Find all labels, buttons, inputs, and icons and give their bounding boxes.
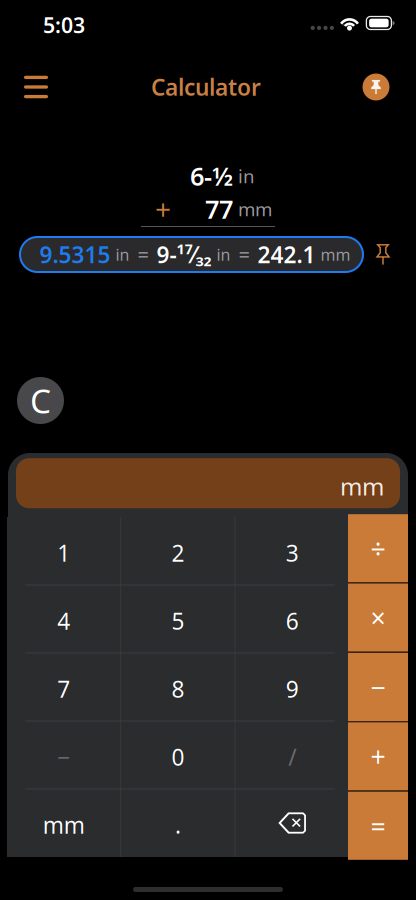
staticText: 4 — [57, 606, 70, 636]
staticText: 6 — [286, 606, 299, 636]
staticText: 77 — [205, 192, 233, 226]
button[interactable]: 1 — [7, 517, 120, 585]
staticText: 6-½ — [190, 159, 233, 193]
button[interactable]: Delete — [236, 789, 349, 857]
button[interactable]: + — [348, 722, 408, 790]
staticText: 242.1 — [257, 239, 315, 269]
button[interactable]: mm — [7, 789, 120, 857]
button[interactable]: 7 — [7, 653, 120, 721]
button[interactable]: . — [121, 789, 235, 857]
staticText: + — [155, 190, 171, 228]
staticText: ÷ — [370, 530, 385, 566]
button[interactable]: ÷ — [348, 514, 408, 582]
staticText: − — [57, 742, 70, 772]
staticText: 0 — [171, 742, 184, 772]
staticText: = — [137, 241, 148, 268]
button[interactable]: / — [236, 721, 349, 789]
staticText: 9-¹⁷⁄₃₂ — [156, 239, 211, 269]
button[interactable]: 0 — [121, 721, 235, 789]
button[interactable]: 4 — [7, 585, 120, 653]
staticText: 8 — [171, 674, 184, 704]
button[interactable]: 8 — [121, 653, 235, 721]
button[interactable]: Menu — [13, 64, 59, 110]
button[interactable]: × — [348, 584, 408, 652]
staticText: × — [370, 600, 385, 635]
staticText: 7 — [57, 674, 70, 704]
staticText: . — [175, 810, 181, 840]
staticText: Calculator — [151, 72, 261, 102]
staticText: in — [115, 244, 129, 265]
staticText: − — [370, 669, 385, 705]
button[interactable]: 5 — [121, 585, 235, 653]
staticText: 2 — [171, 538, 184, 568]
staticText: mm — [320, 244, 350, 265]
button[interactable]: 2 — [121, 517, 235, 585]
staticText: in — [238, 164, 255, 188]
button[interactable]: 9 — [236, 653, 349, 721]
staticText: = — [238, 241, 249, 268]
staticText: + — [370, 739, 385, 774]
button[interactable]: − — [348, 653, 408, 721]
staticText: 5:03 — [43, 11, 85, 39]
staticText: 9.5315 — [39, 239, 110, 269]
staticText: 1 — [57, 538, 70, 568]
button[interactable]: Pin result — [353, 64, 399, 110]
staticText: mm — [43, 810, 85, 840]
button[interactable]: 9.5315 — [20, 237, 363, 272]
button[interactable]: = — [348, 792, 408, 860]
staticText: 3 — [286, 538, 299, 568]
staticText: mm — [238, 197, 272, 221]
staticText: 9 — [286, 674, 299, 704]
staticText: mm — [340, 470, 384, 502]
staticText: = — [370, 808, 385, 843]
button[interactable]: 6 — [236, 585, 349, 653]
button[interactable]: Unpin — [370, 237, 396, 272]
staticText: C — [30, 378, 51, 423]
staticText: in — [216, 244, 230, 265]
staticText: / — [288, 742, 296, 772]
staticText: 5 — [171, 606, 184, 636]
button[interactable]: C — [17, 377, 64, 424]
button[interactable]: 3 — [236, 517, 349, 585]
button[interactable]: − — [7, 721, 120, 789]
